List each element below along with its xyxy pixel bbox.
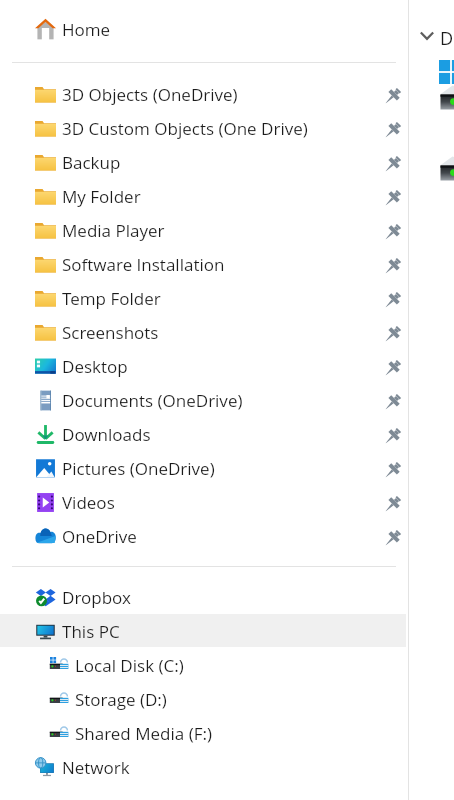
button[interactable]: 3D Objects (OneDrive) (0, 77, 408, 111)
button[interactable]: Pictures (OneDrive) (0, 451, 408, 485)
staticText: Temp Folder (62, 287, 161, 310)
staticText: Desktop (62, 355, 128, 378)
staticText: Screenshots (62, 321, 159, 344)
button[interactable]: Unpin Desktop (382, 358, 403, 379)
button[interactable]: Unpin Documents (OneDrive) (382, 392, 403, 413)
staticText: This PC (62, 620, 120, 643)
button[interactable]: Downloads (0, 417, 408, 451)
button[interactable]: Home (0, 12, 408, 46)
button[interactable]: Storage (D:) (0, 682, 408, 716)
staticText: Videos (62, 491, 115, 514)
button[interactable]: Screenshots (0, 315, 408, 349)
staticText: Storage (D:) (75, 688, 167, 711)
staticText: OneDrive (62, 525, 137, 548)
button[interactable]: Unpin Downloads (382, 426, 403, 447)
staticText: D (440, 26, 454, 51)
button[interactable]: Unpin Backup (382, 154, 403, 175)
button[interactable]: Dropbox (0, 580, 408, 614)
button[interactable]: Unpin 3D Custom Objects (One Drive) (382, 120, 403, 141)
button[interactable]: Collapse (420, 30, 434, 41)
staticText: Pictures (OneDrive) (62, 457, 215, 480)
staticText: My Folder (62, 185, 141, 208)
staticText: Shared Media (F:) (75, 722, 213, 745)
button[interactable]: Network (0, 750, 408, 784)
button[interactable]: Unpin Temp Folder (382, 290, 403, 311)
button[interactable]: Documents (OneDrive) (0, 383, 408, 417)
button[interactable]: Videos (0, 485, 408, 519)
button[interactable]: My Folder (0, 179, 408, 213)
button[interactable]: Backup (0, 145, 408, 179)
button[interactable]: OneDrive (0, 519, 408, 553)
button[interactable]: Shared Media (F:) (0, 716, 408, 750)
button[interactable]: Unpin Media Player (382, 222, 403, 243)
button[interactable]: Unpin My Folder (382, 188, 403, 209)
staticText: 3D Objects (OneDrive) (62, 83, 238, 106)
staticText: Local Disk (C:) (75, 654, 184, 677)
button[interactable]: Local Disk (C:) (0, 648, 408, 682)
staticText: Software Installation (62, 253, 225, 276)
staticText: Backup (62, 151, 121, 174)
staticText: Documents (OneDrive) (62, 389, 243, 412)
staticText: Dropbox (62, 586, 131, 609)
button[interactable]: This PC (0, 614, 408, 648)
staticText: Media Player (62, 219, 165, 242)
button[interactable]: Unpin Screenshots (382, 324, 403, 345)
button[interactable]: 3D Custom Objects (One Drive) (0, 111, 408, 145)
button[interactable]: Unpin 3D Objects (OneDrive) (382, 86, 403, 107)
button[interactable]: Desktop (0, 349, 408, 383)
button[interactable]: Media Player (0, 213, 408, 247)
button[interactable]: Unpin Videos (382, 494, 403, 515)
button[interactable]: Software Installation (0, 247, 408, 281)
staticText: 3D Custom Objects (One Drive) (62, 117, 308, 140)
button[interactable]: Unpin Software Installation (382, 256, 403, 277)
staticText: Home (62, 18, 111, 41)
button[interactable]: Unpin OneDrive (382, 528, 403, 549)
staticText: Network (62, 756, 130, 779)
button[interactable]: Unpin Pictures (OneDrive) (382, 460, 403, 481)
button[interactable]: Temp Folder (0, 281, 408, 315)
staticText: Downloads (62, 423, 151, 446)
